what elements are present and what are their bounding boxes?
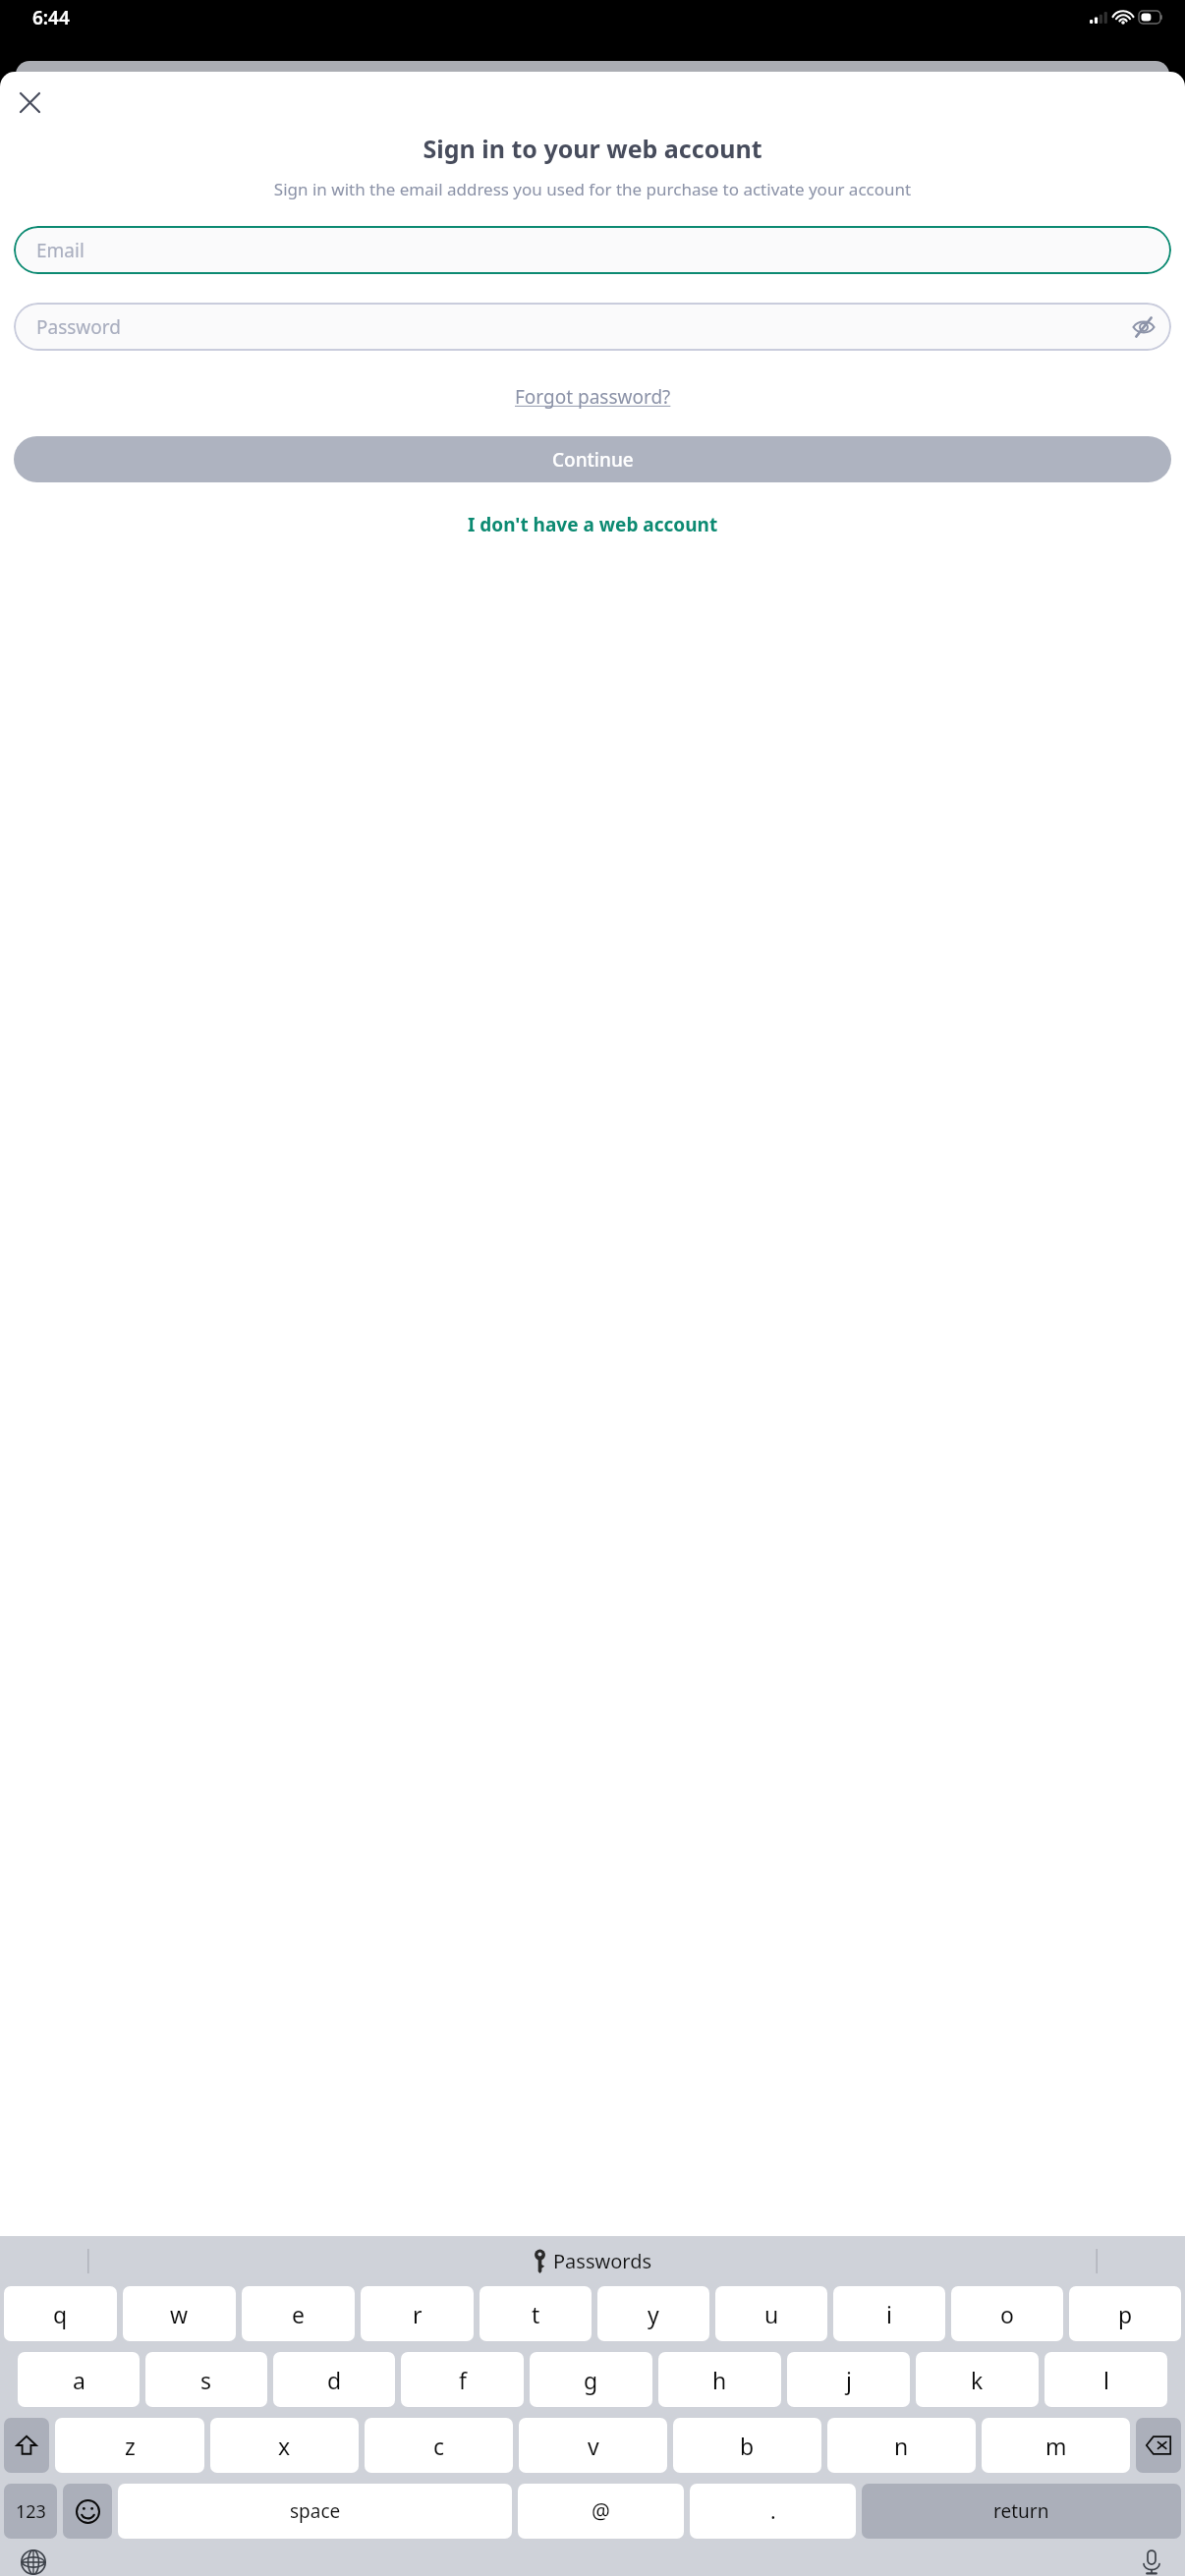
staticText: w (170, 2299, 189, 2329)
button[interactable]: j (787, 2352, 910, 2407)
button[interactable]: Forgot password? (505, 378, 681, 416)
button[interactable]: p (1069, 2286, 1181, 2341)
staticText: t (532, 2299, 540, 2329)
button[interactable]: Close (6, 79, 53, 126)
button[interactable]: c (365, 2418, 513, 2473)
button[interactable]: t (480, 2286, 592, 2341)
button[interactable]: r (361, 2286, 474, 2341)
button[interactable]: v (519, 2418, 667, 2473)
staticText: space (290, 2498, 341, 2524)
button[interactable]: Show password (1122, 306, 1165, 349)
button[interactable]: q (4, 2286, 117, 2341)
button[interactable]: return (862, 2484, 1181, 2539)
button[interactable]: k (916, 2352, 1039, 2407)
staticText: Forgot password? (515, 384, 671, 410)
staticText: @ (592, 2497, 610, 2526)
button[interactable]: l (1044, 2352, 1167, 2407)
staticText: l (1103, 2365, 1109, 2395)
staticText: c (433, 2431, 445, 2461)
staticText: return (993, 2498, 1049, 2524)
button[interactable]: y (597, 2286, 709, 2341)
button[interactable]: Dictation (1128, 2548, 1175, 2576)
button[interactable]: Shift (4, 2418, 49, 2473)
button[interactable]: @ (518, 2484, 684, 2539)
staticText: x (278, 2431, 291, 2461)
staticText: b (740, 2431, 755, 2461)
button[interactable]: o (951, 2286, 1063, 2341)
staticText: 123 (16, 2499, 46, 2524)
button[interactable]: I don't have a web account (456, 506, 730, 543)
staticText: h (712, 2365, 727, 2395)
staticText: Continue (552, 447, 634, 473)
button[interactable]: Passwords (534, 2248, 652, 2274)
button[interactable]: Password (14, 303, 1171, 351)
staticText: Email (36, 238, 85, 263)
button[interactable]: Numbers (4, 2484, 57, 2539)
staticText: d (327, 2365, 342, 2395)
button[interactable]: a (18, 2352, 140, 2407)
staticText: a (73, 2365, 85, 2395)
staticText: r (413, 2299, 423, 2329)
staticText: s (200, 2365, 212, 2395)
staticText: . (770, 2497, 776, 2526)
button[interactable]: z (55, 2418, 204, 2473)
button[interactable]: d (273, 2352, 395, 2407)
button[interactable]: x (210, 2418, 359, 2473)
staticText: y (648, 2299, 659, 2329)
button[interactable]: u (715, 2286, 827, 2341)
staticText: Sign in to your web account (20, 132, 1165, 165)
staticText: o (1000, 2299, 1014, 2329)
button[interactable]: space (118, 2484, 512, 2539)
button[interactable]: Change keyboard (10, 2548, 57, 2576)
staticText: i (886, 2299, 892, 2329)
button[interactable]: Emoji (63, 2484, 112, 2539)
staticText: z (125, 2431, 136, 2461)
button[interactable]: f (401, 2352, 524, 2407)
button[interactable]: i (833, 2286, 945, 2341)
staticText: p (1118, 2299, 1133, 2329)
button[interactable]: w (123, 2286, 236, 2341)
staticText: Password (36, 314, 121, 340)
staticText: n (894, 2431, 909, 2461)
staticText: Sign in with the email address you used … (20, 178, 1165, 200)
staticText: Passwords (553, 2248, 652, 2274)
button[interactable]: Backspace (1136, 2418, 1181, 2473)
button[interactable]: s (145, 2352, 267, 2407)
button[interactable]: e (242, 2286, 355, 2341)
button[interactable]: b (673, 2418, 821, 2473)
button[interactable]: Continue (14, 436, 1171, 482)
staticText: j (846, 2365, 852, 2395)
button[interactable]: h (658, 2352, 781, 2407)
staticText: e (292, 2299, 305, 2329)
staticText: m (1045, 2431, 1067, 2461)
staticText: u (764, 2299, 779, 2329)
staticText: I don't have a web account (468, 512, 718, 537)
button[interactable]: m (982, 2418, 1130, 2473)
staticText: g (584, 2365, 598, 2395)
staticText: f (459, 2365, 467, 2395)
button[interactable]: Email (14, 226, 1171, 274)
button[interactable]: n (827, 2418, 976, 2473)
button[interactable]: . (690, 2484, 856, 2539)
button[interactable]: g (530, 2352, 652, 2407)
staticText: v (588, 2431, 599, 2461)
staticText: k (971, 2365, 984, 2395)
staticText: 6:44 (32, 5, 70, 30)
staticText: q (53, 2299, 68, 2329)
